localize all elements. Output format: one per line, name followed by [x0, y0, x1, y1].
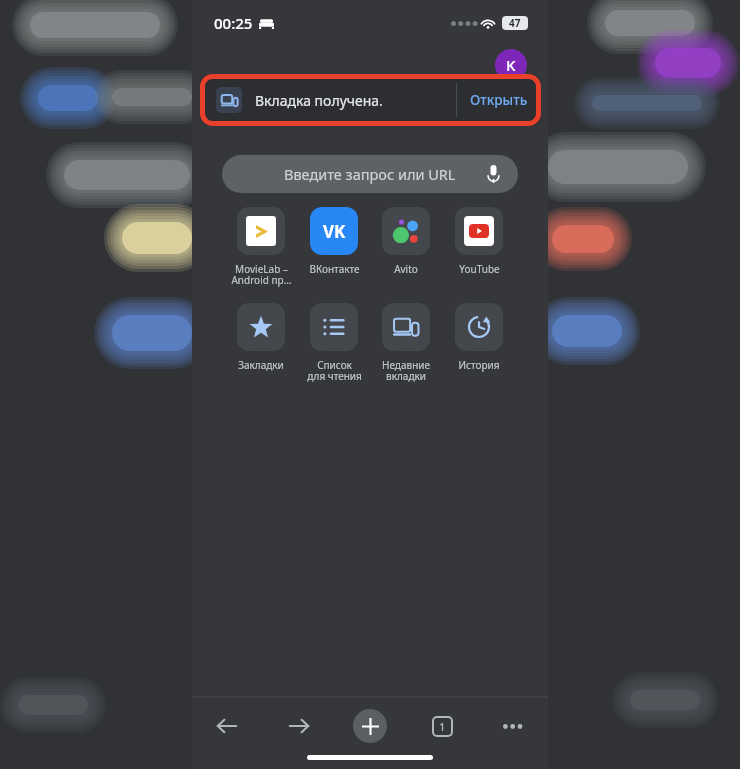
staticText: 1	[439, 719, 446, 734]
staticText: Недавние вкладки	[382, 358, 430, 383]
staticText: YouTube	[459, 262, 500, 276]
button[interactable]: Введите запрос или URL	[222, 155, 518, 193]
button[interactable]: New tab	[353, 709, 387, 743]
button[interactable]: Avito	[375, 207, 437, 276]
staticText: K	[506, 55, 516, 75]
button[interactable]: Открыть	[457, 74, 541, 126]
button[interactable]: MovieLab – Android пр…	[230, 207, 292, 287]
button[interactable]: VK	[303, 207, 365, 276]
staticText: История	[458, 358, 500, 372]
staticText: Avito	[394, 262, 418, 276]
staticText: MovieLab – Android пр…	[231, 262, 292, 287]
button[interactable]: YouTube	[448, 207, 510, 276]
button[interactable]: История	[448, 303, 510, 372]
staticText: 00:25	[214, 13, 253, 33]
button[interactable]: Недавние вкладки	[375, 303, 437, 383]
button[interactable]: More options	[496, 709, 530, 743]
staticText: Список для чтения	[307, 358, 362, 383]
staticText: 47	[509, 16, 521, 30]
button[interactable]: Back	[210, 709, 244, 743]
staticText: VK	[323, 220, 346, 243]
button[interactable]: Account	[495, 49, 527, 81]
staticText: Закладки	[238, 358, 284, 372]
button[interactable]: Список для чтения	[303, 303, 365, 383]
staticText: Вкладка получена.	[255, 91, 383, 110]
staticText: Открыть	[470, 91, 528, 109]
button[interactable]: Forward	[282, 709, 316, 743]
button[interactable]: Вкладка получена.	[200, 74, 541, 126]
button[interactable]: Tabs	[425, 709, 459, 743]
staticText: ВКонтакте	[309, 262, 360, 276]
staticText: Введите запрос или URL	[284, 164, 456, 184]
button[interactable]: Закладки	[230, 303, 292, 372]
